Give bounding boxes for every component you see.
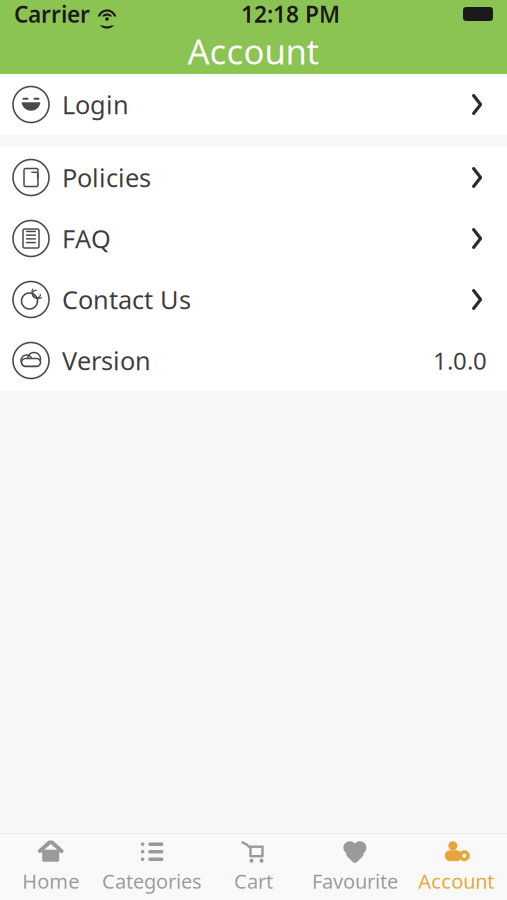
- button[interactable]: Home: [0, 835, 101, 899]
- button[interactable]: Contact Us: [0, 269, 507, 330]
- staticText: Policies: [62, 161, 151, 194]
- staticText: Account: [418, 868, 494, 894]
- button[interactable]: Cart: [203, 835, 304, 899]
- button[interactable]: Login: [0, 74, 507, 135]
- button[interactable]: Policies: [0, 147, 507, 208]
- staticText: 1.0.0: [433, 345, 487, 376]
- staticText: Account: [187, 28, 319, 74]
- button[interactable]: Account: [406, 835, 507, 899]
- staticText: FAQ: [62, 222, 111, 255]
- staticText: Categories: [102, 868, 202, 894]
- staticText: Contact Us: [62, 283, 191, 316]
- staticText: 12:18 PM: [241, 0, 340, 29]
- button[interactable]: Favourite: [304, 835, 406, 899]
- staticText: Login: [62, 88, 129, 121]
- staticText: Carrier: [14, 0, 90, 29]
- button[interactable]: FAQ: [0, 208, 507, 269]
- button[interactable]: Version: [0, 330, 507, 391]
- staticText: Home: [22, 868, 79, 894]
- staticText: Favourite: [312, 868, 398, 894]
- staticText: Version: [62, 344, 151, 377]
- staticText: Cart: [234, 868, 273, 894]
- button[interactable]: Categories: [101, 835, 203, 899]
